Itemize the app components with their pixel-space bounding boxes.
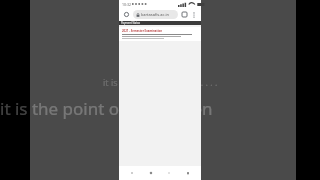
staticText: Payment Status — [121, 21, 141, 25]
staticText: it is the point of the screen — [0, 97, 213, 120]
button[interactable]: Tabs — [180, 10, 189, 19]
button[interactable]: Delete — [182, 167, 194, 179]
button[interactable]: Home — [145, 167, 157, 179]
staticText: 10:32 — [122, 2, 131, 7]
button[interactable]: Recents — [163, 167, 175, 179]
staticText: it is the end of it now . . . . . — [103, 76, 218, 88]
button[interactable]: Home — [122, 10, 131, 19]
staticText: kartasafis.ac.in — [141, 12, 170, 17]
button[interactable]: More options — [189, 10, 198, 19]
staticText: 2021 - Semester Examination — [122, 29, 163, 33]
button[interactable]: Back — [126, 167, 138, 179]
button[interactable]: kartasafis.ac.in — [133, 10, 178, 19]
button[interactable]: Payment Status — [119, 21, 201, 25]
